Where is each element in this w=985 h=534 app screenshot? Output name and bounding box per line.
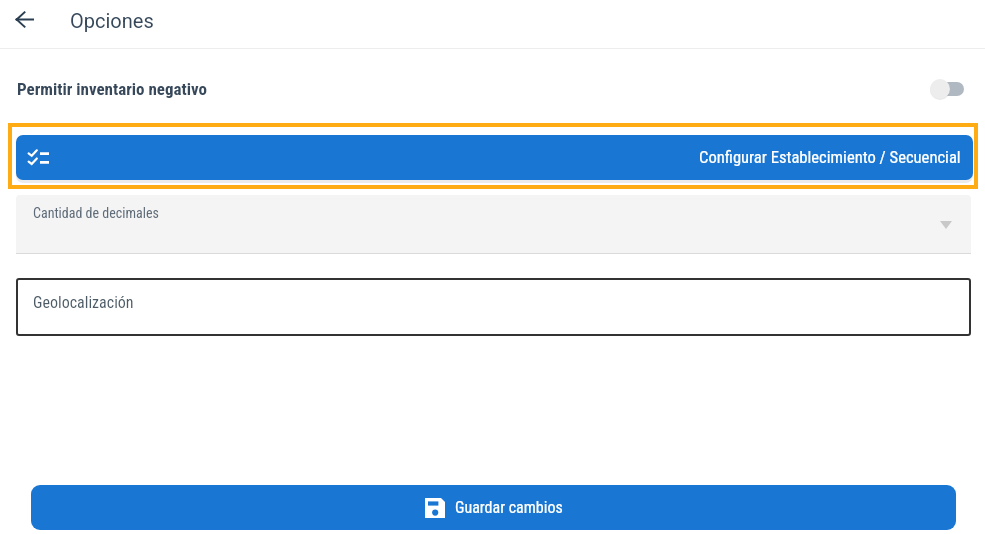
staticText: Geolocalización: [33, 293, 134, 312]
button[interactable]: Configurar Establecimiento / Secuencial: [16, 135, 973, 180]
staticText: Cantidad de decimales: [33, 205, 159, 221]
staticText: Permitir inventario negativo: [17, 79, 207, 99]
button[interactable]: Back: [8, 3, 40, 35]
staticText: Opciones: [70, 9, 154, 32]
staticText: Guardar cambios: [455, 498, 563, 517]
button[interactable]: Guardar cambios: [31, 485, 956, 530]
button[interactable]: Permitir inventario negativo: [930, 78, 964, 100]
button[interactable]: Permitir inventario negativo: [0, 68, 985, 110]
button[interactable]: Geolocalización: [16, 278, 971, 336]
button[interactable]: Cantidad de decimales: [16, 195, 971, 254]
staticText: Configurar Establecimiento / Secuencial: [699, 148, 961, 167]
